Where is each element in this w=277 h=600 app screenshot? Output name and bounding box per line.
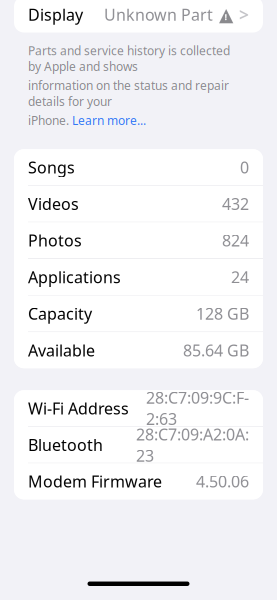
staticText: Unknown Part — [104, 4, 213, 25]
staticText: 432 — [222, 193, 249, 214]
staticText: Applications — [28, 266, 121, 288]
staticText: Modem Firmware — [28, 471, 162, 492]
button[interactable]: Photos — [14, 222, 263, 258]
staticText: Display — [28, 4, 83, 25]
staticText: 24 — [231, 266, 249, 288]
button[interactable]: Wi-Fi Address — [14, 390, 263, 426]
staticText: Songs — [28, 157, 75, 178]
staticText: 4.50.06 — [196, 471, 249, 492]
button[interactable]: Capacity — [14, 296, 263, 332]
staticText: 28:C7:09:9C:F2:63 — [146, 387, 249, 429]
staticText: 28:C7:09:A2:0A:23 — [136, 424, 249, 466]
button[interactable]: Bluetooth — [14, 427, 263, 463]
staticText: Parts and service history is collected b… — [28, 42, 230, 74]
staticText: 85.64 GB — [183, 340, 249, 361]
button[interactable]: Display — [14, 0, 263, 32]
staticText: ▲ — [219, 4, 233, 25]
staticText: 824 — [222, 230, 249, 251]
staticText: information on the status and repair det… — [28, 77, 229, 109]
button[interactable]: Learn more... — [69, 112, 146, 128]
button[interactable]: Applications — [14, 259, 263, 295]
button[interactable]: Songs — [14, 149, 263, 185]
button[interactable]: Modem Firmware — [14, 463, 263, 499]
staticText: 128 GB — [196, 303, 249, 324]
staticText: Videos — [28, 193, 79, 214]
staticText: Photos — [28, 230, 82, 251]
staticText: > — [239, 3, 249, 26]
staticText: Wi-Fi Address — [28, 398, 129, 419]
staticText: Available — [28, 340, 95, 361]
staticText: ! — [224, 10, 227, 23]
staticText: Learn more... — [69, 112, 146, 128]
staticText: Bluetooth — [28, 434, 103, 455]
staticText: Capacity — [28, 303, 92, 324]
button[interactable]: Available — [14, 332, 263, 368]
button[interactable]: Videos — [14, 186, 263, 222]
staticText: 0 — [240, 157, 249, 178]
staticText: iPhone. — [28, 112, 69, 128]
